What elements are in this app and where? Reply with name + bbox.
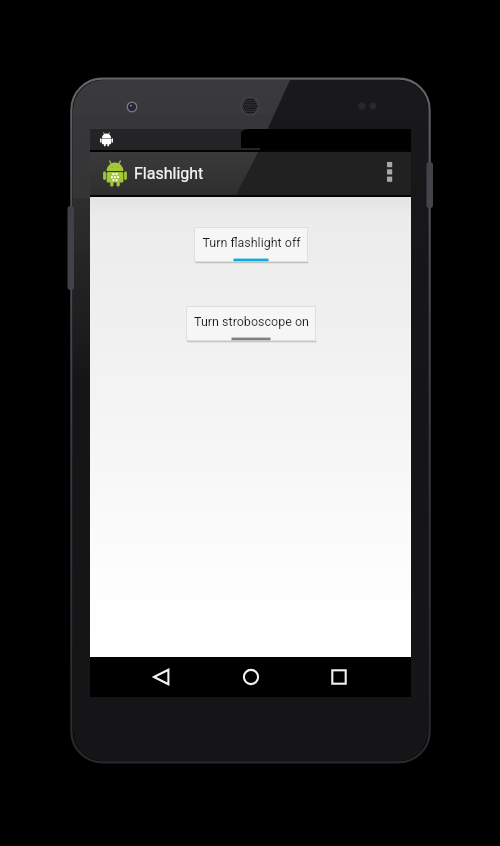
button[interactable]: Back <box>141 657 183 697</box>
staticText: Turn flashlight off <box>202 235 301 250</box>
staticText: Flashlight <box>134 164 204 183</box>
button[interactable]: Home <box>230 657 272 697</box>
button[interactable]: More options <box>375 152 405 195</box>
button[interactable]: Turn stroboscope on <box>186 306 316 341</box>
button[interactable]: Flashlight <box>90 152 411 195</box>
button[interactable]: Recents <box>318 657 360 697</box>
staticText: Turn stroboscope on <box>194 314 309 329</box>
button[interactable]: Turn flashlight off <box>194 227 308 262</box>
